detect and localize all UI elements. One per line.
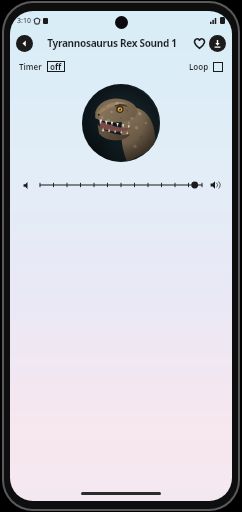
- button[interactable]: [40, 176, 202, 194]
- button[interactable]: Mute: [20, 178, 34, 192]
- button[interactable]: Loop: [189, 59, 223, 74]
- button[interactable]: Favorite: [190, 34, 208, 52]
- button[interactable]: Download: [209, 35, 226, 52]
- staticText: off: [50, 61, 62, 72]
- button[interactable]: Volume up: [208, 178, 222, 192]
- staticText: Loop: [189, 61, 209, 72]
- button[interactable]: Timer: [19, 59, 65, 74]
- staticText: Timer: [19, 61, 42, 72]
- staticText: 3:10: [17, 16, 31, 26]
- staticText: Tyrannosaurus Rex Sound 1: [36, 36, 188, 50]
- button[interactable]: Sound artwork: [82, 84, 160, 162]
- button[interactable]: Back: [16, 35, 33, 52]
